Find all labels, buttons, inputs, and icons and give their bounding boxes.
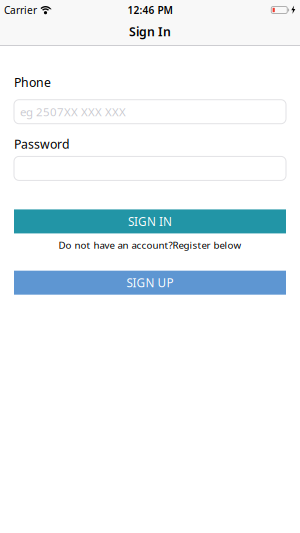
button[interactable]: SIGN IN	[14, 209, 286, 233]
staticText: Password	[14, 136, 70, 152]
staticText: Phone	[14, 74, 51, 91]
staticText: Do not have an account?Register below	[58, 238, 241, 252]
staticText: 12:46 PM	[127, 3, 172, 17]
button[interactable]: Password	[14, 156, 286, 180]
button[interactable]: Phone	[14, 100, 286, 124]
staticText: SIGN UP	[126, 275, 173, 291]
staticText: Carrier	[4, 3, 37, 17]
staticText: Sign In	[129, 23, 171, 40]
staticText: eg 2507XX XXX XXX	[20, 104, 126, 119]
button[interactable]: SIGN UP	[14, 271, 286, 295]
staticText: SIGN IN	[128, 213, 172, 229]
